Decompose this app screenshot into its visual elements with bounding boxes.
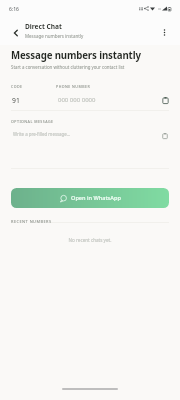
staticText: 6:16 bbox=[9, 6, 19, 13]
button[interactable]: Paste phone number bbox=[157, 92, 173, 108]
button[interactable]: Back bbox=[7, 24, 25, 42]
staticText: RECENT NUMBERS bbox=[11, 219, 52, 224]
staticText: 000 000 0000 bbox=[58, 96, 96, 104]
button[interactable]: Paste message bbox=[157, 128, 173, 144]
staticText: No recent chats yet. bbox=[0, 237, 180, 243]
staticText: Message numbers instantly bbox=[25, 33, 84, 39]
staticText: Write a pre-filled message... bbox=[13, 131, 71, 137]
button[interactable]: More options bbox=[155, 23, 173, 41]
staticText: Open in WhatsApp bbox=[71, 194, 121, 202]
staticText: Start a conversation without cluttering … bbox=[11, 64, 125, 70]
staticText: PHONE NUMBER bbox=[56, 84, 91, 89]
staticText: Message numbers instantly bbox=[11, 49, 141, 62]
staticText: Direct Chat bbox=[25, 22, 62, 31]
staticText: OPTIONAL MESSAGE bbox=[11, 119, 54, 124]
staticText: 91 bbox=[12, 96, 20, 105]
staticText: CODE bbox=[11, 84, 23, 89]
button[interactable]: Open in WhatsApp bbox=[11, 188, 169, 208]
